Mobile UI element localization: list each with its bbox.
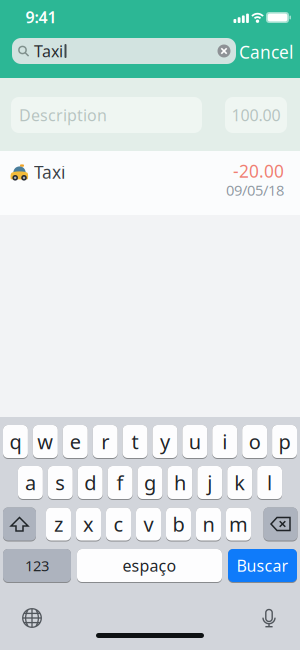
button[interactable]: r (93, 425, 118, 459)
button[interactable]: e (63, 425, 88, 459)
staticText: y (160, 428, 170, 455)
button[interactable]: y (152, 425, 177, 459)
staticText: x (83, 511, 94, 537)
staticText: t (131, 428, 138, 455)
button[interactable]: Taxi (0, 151, 300, 215)
button[interactable]: espaço (77, 549, 222, 583)
button[interactable]: j (197, 466, 222, 500)
staticText: z (54, 511, 63, 537)
staticText: m (229, 511, 248, 537)
button[interactable]: m (226, 507, 251, 541)
button[interactable]: Next keyboard (22, 608, 42, 628)
button[interactable]: Shift (3, 507, 36, 541)
staticText: a (25, 469, 36, 496)
button[interactable]: f (108, 466, 132, 500)
staticText: Buscar (236, 555, 288, 576)
staticText: r (101, 428, 109, 455)
staticText: v (143, 511, 153, 537)
button[interactable]: g (137, 466, 162, 500)
button[interactable]: Delete (263, 507, 297, 541)
button[interactable]: a (18, 466, 43, 500)
staticText: 123 (25, 556, 49, 575)
button[interactable]: Clear text (217, 44, 230, 57)
button[interactable]: c (106, 507, 131, 541)
button[interactable]: s (48, 466, 73, 500)
staticText: j (207, 469, 212, 496)
staticText: f (117, 469, 124, 496)
button[interactable]: Cancel (239, 40, 293, 63)
button[interactable]: w (33, 425, 58, 459)
button[interactable]: i (212, 425, 237, 459)
staticText: b (172, 511, 184, 537)
button[interactable]: u (182, 425, 207, 459)
staticText: e (70, 428, 81, 455)
staticText: Taxi (34, 160, 65, 183)
staticText: Cancel (239, 40, 293, 63)
staticText: w (37, 428, 53, 455)
button[interactable]: t (123, 425, 147, 459)
button[interactable]: p (272, 425, 297, 459)
staticText: q (9, 428, 21, 455)
staticText: Description (19, 104, 107, 126)
staticText: Taxi (34, 40, 63, 62)
button[interactable]: q (3, 425, 28, 459)
staticText: o (249, 428, 261, 455)
button[interactable]: Buscar (228, 549, 297, 583)
staticText: 9:41 (25, 6, 56, 28)
staticText: p (279, 428, 291, 455)
staticText: k (234, 469, 245, 496)
staticText: -20.00 (233, 159, 284, 182)
button[interactable]: d (78, 466, 103, 500)
staticText: l (267, 469, 272, 496)
button[interactable]: z (46, 507, 71, 541)
button[interactable]: v (136, 507, 161, 541)
staticText: 09/05/18 (226, 180, 284, 200)
button[interactable]: k (227, 466, 252, 500)
staticText: u (189, 428, 201, 455)
button[interactable]: l (257, 466, 282, 500)
staticText: s (55, 469, 65, 496)
staticText: h (174, 469, 186, 496)
button[interactable]: 100.00 (225, 97, 287, 133)
staticText: g (144, 469, 156, 496)
button[interactable]: 123 (3, 549, 71, 583)
staticText: d (84, 469, 96, 496)
staticText: i (222, 428, 227, 455)
button[interactable]: x (76, 507, 101, 541)
staticText: espaço (122, 555, 176, 576)
button[interactable]: Description (11, 97, 202, 133)
button[interactable]: h (167, 466, 192, 500)
button[interactable]: n (196, 507, 221, 541)
staticText: 100.00 (231, 104, 280, 126)
button[interactable]: o (242, 425, 267, 459)
button[interactable]: Dictation (262, 608, 276, 627)
staticText: c (113, 511, 123, 537)
button[interactable]: Taxi (12, 38, 236, 64)
button[interactable]: b (166, 507, 191, 541)
staticText: n (202, 511, 214, 537)
